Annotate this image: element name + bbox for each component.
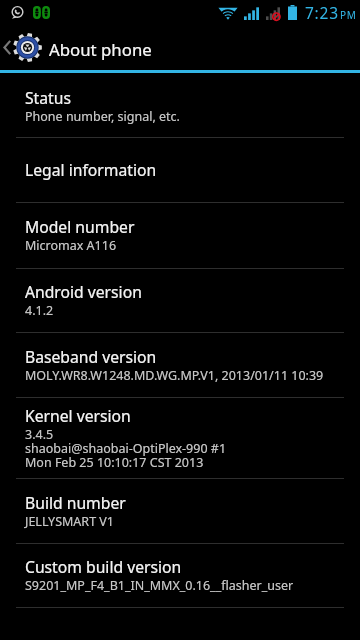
button[interactable]: Status bbox=[0, 73, 360, 137]
staticText: Status bbox=[25, 87, 71, 108]
staticText: Phone number, signal, etc. bbox=[25, 108, 180, 125]
staticText: Custom build version bbox=[25, 556, 182, 577]
staticText: Build number bbox=[25, 492, 126, 513]
staticText: Kernel version bbox=[25, 405, 131, 426]
button[interactable]: Android version bbox=[0, 269, 360, 332]
staticText: Baseband version bbox=[25, 346, 157, 367]
staticText: S9201_MP_F4_B1_IN_MMX_0.16__flasher_user bbox=[25, 577, 294, 594]
staticText: 4.1.2 bbox=[25, 302, 54, 319]
button[interactable]: Model number bbox=[0, 203, 360, 268]
staticText: 7:23 bbox=[305, 2, 339, 23]
button[interactable]: Build number bbox=[0, 479, 360, 543]
staticText: JELLYSMART V1 bbox=[25, 513, 114, 530]
button[interactable]: Baseband version bbox=[0, 333, 360, 397]
button[interactable]: Legal information bbox=[0, 138, 360, 202]
staticText: Model number bbox=[25, 216, 135, 237]
button[interactable]: Custom build version bbox=[0, 544, 360, 607]
staticText: MOLY.WR8.W1248.MD.WG.MP.V1, 2013/01/11 1… bbox=[25, 367, 324, 384]
button[interactable]: About phone bbox=[0, 24, 360, 70]
staticText: Android version bbox=[25, 281, 142, 302]
staticText: 3.4.5 shaobai@shaobai-OptiPlex-990 #1 Mo… bbox=[25, 426, 227, 471]
button[interactable]: Kernel version bbox=[0, 398, 360, 478]
staticText: Micromax A116 bbox=[25, 237, 117, 254]
staticText: About phone bbox=[49, 38, 152, 61]
staticText: Legal information bbox=[25, 159, 157, 180]
staticText: PM bbox=[340, 8, 357, 22]
